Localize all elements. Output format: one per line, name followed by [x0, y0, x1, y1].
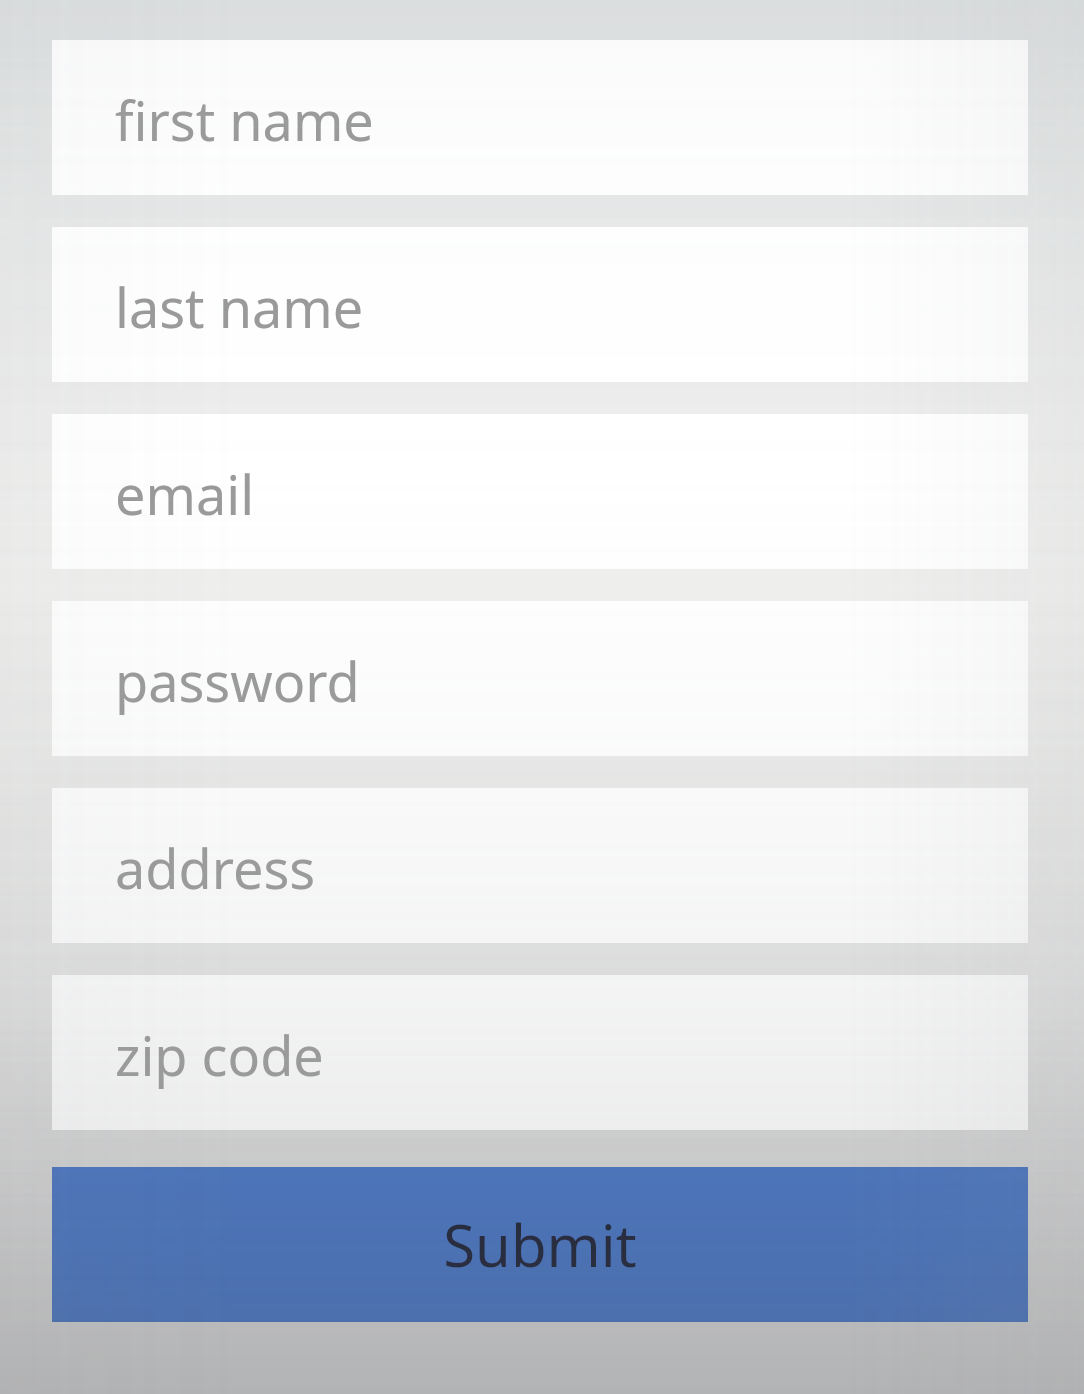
button[interactable]: zip code — [52, 975, 1028, 1130]
staticText: zip code — [115, 1018, 324, 1092]
staticText: first name — [115, 83, 374, 157]
button[interactable]: Submit — [52, 1167, 1028, 1322]
button[interactable]: email — [52, 414, 1028, 569]
staticText: last name — [115, 270, 364, 344]
staticText: address — [115, 831, 316, 905]
staticText: Submit — [443, 1205, 637, 1284]
button[interactable]: password — [52, 601, 1028, 756]
button[interactable]: first name — [52, 40, 1028, 195]
button[interactable]: address — [52, 788, 1028, 943]
staticText: email — [115, 457, 255, 531]
button[interactable]: last name — [52, 227, 1028, 382]
staticText: password — [115, 644, 360, 718]
